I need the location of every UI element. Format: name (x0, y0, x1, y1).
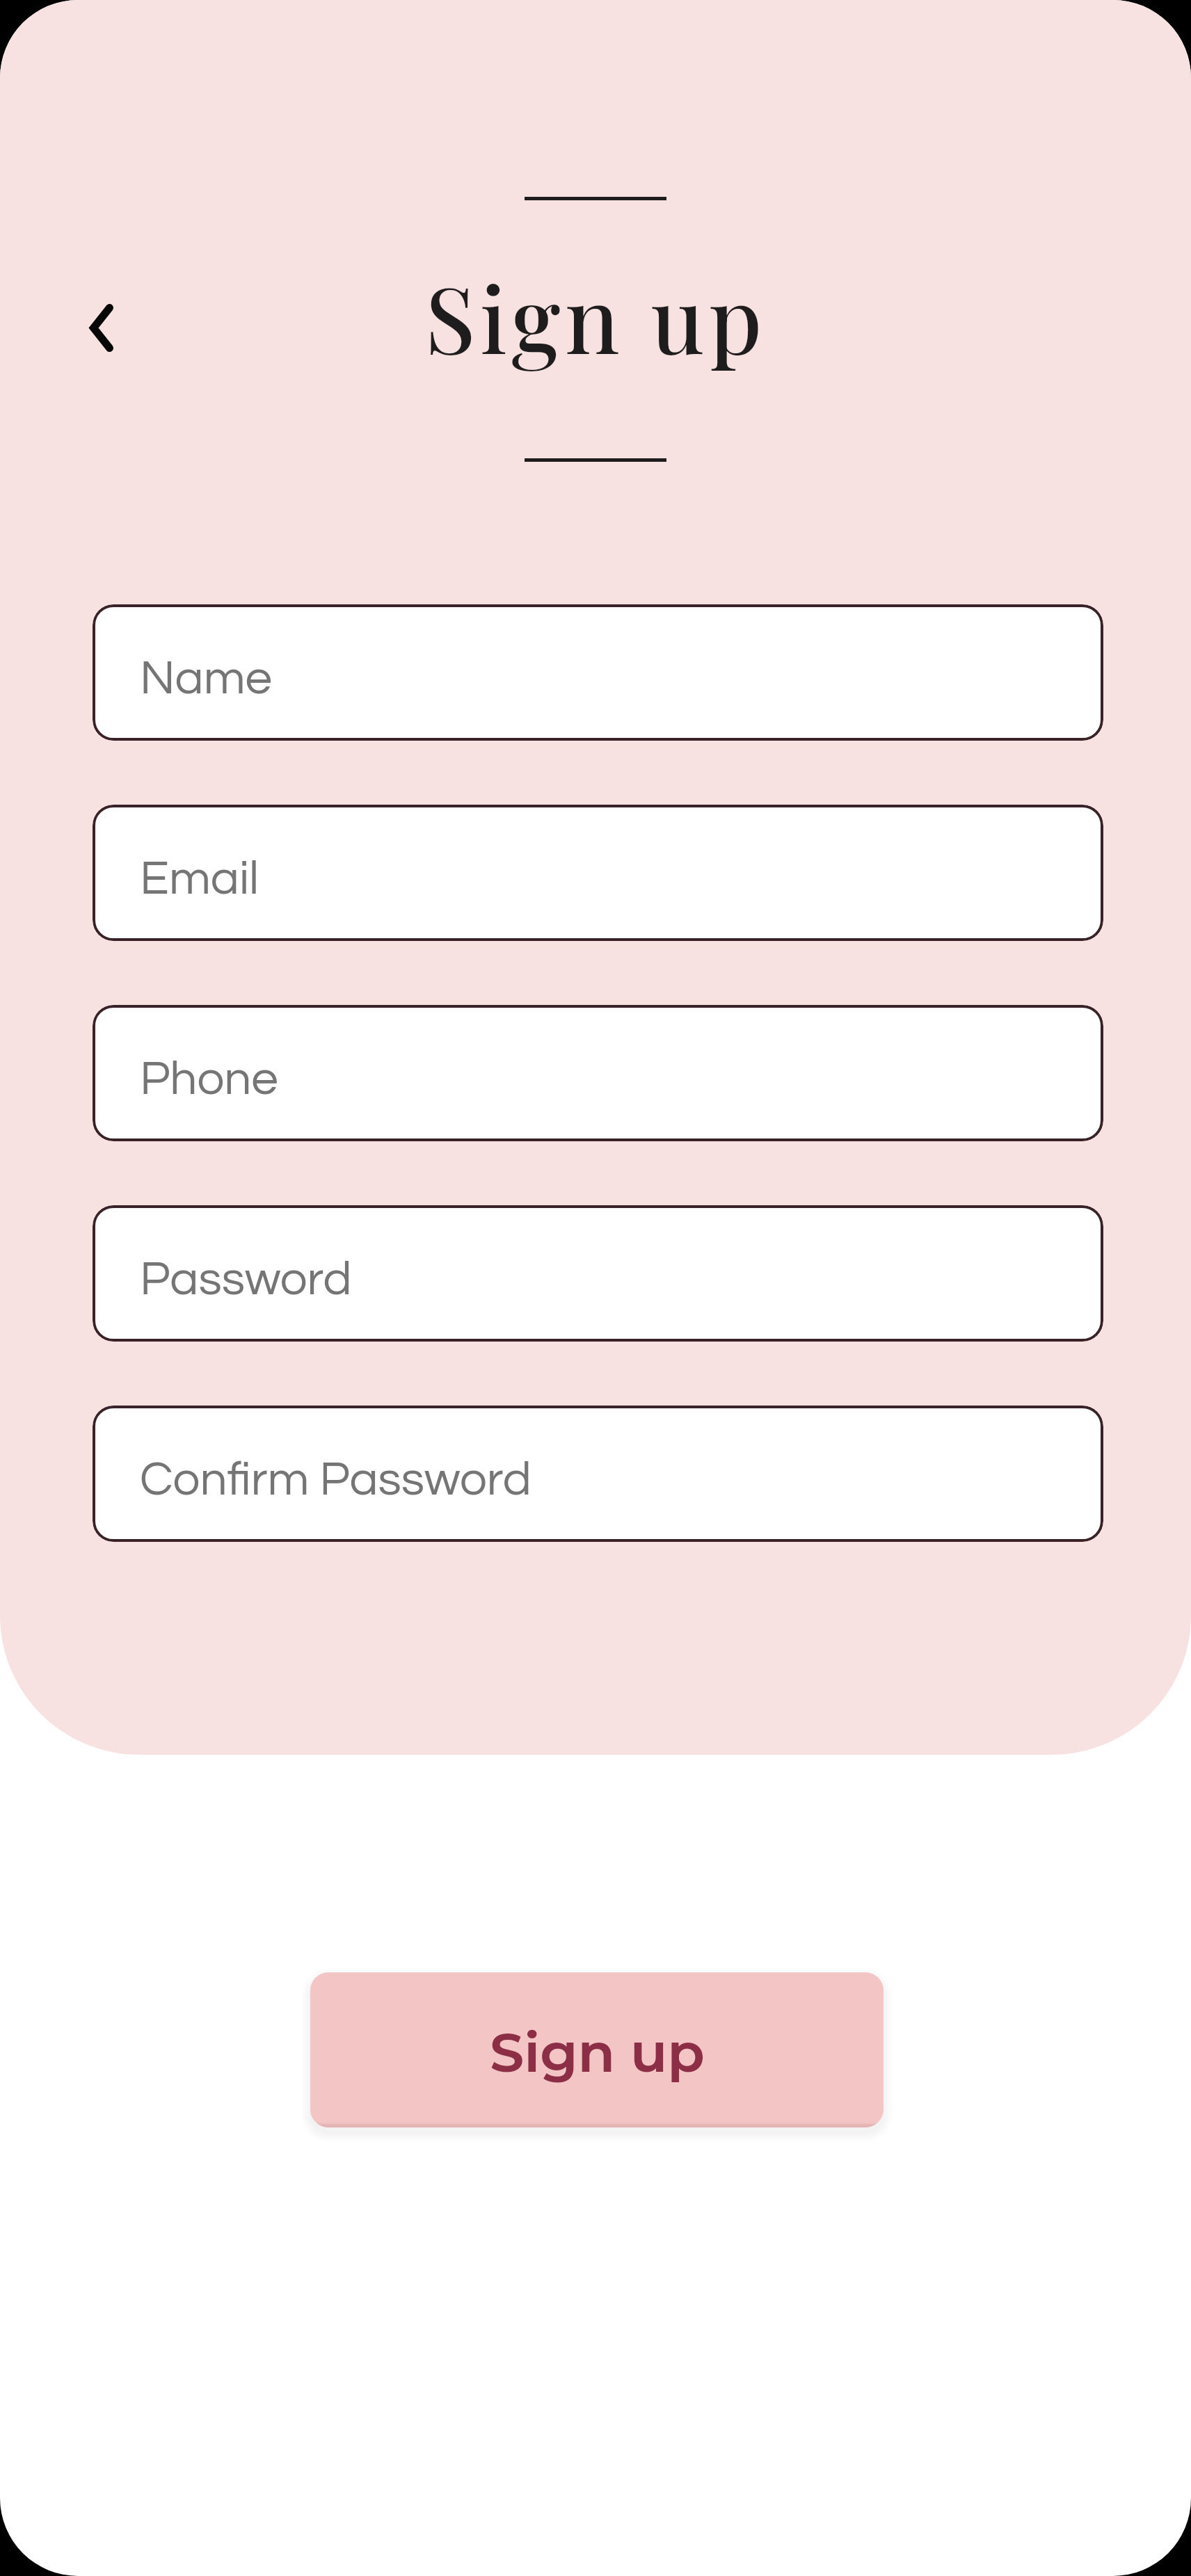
staticText: Sign up (425, 255, 767, 377)
button[interactable]: Phone (93, 1005, 1103, 1141)
button[interactable]: Password (93, 1205, 1103, 1342)
staticText: Sign up (490, 2019, 705, 2085)
button[interactable]: Sign up (310, 1972, 884, 2127)
button[interactable]: Back (49, 275, 154, 380)
button[interactable]: Name (93, 604, 1103, 741)
staticText: Email (140, 854, 259, 903)
staticText: Phone (140, 1054, 278, 1104)
button[interactable]: Confirm Password (93, 1406, 1103, 1542)
staticText: Confirm Password (140, 1455, 531, 1504)
button[interactable]: Email (93, 805, 1103, 941)
staticText: Name (140, 654, 272, 703)
staticText: Password (140, 1255, 352, 1304)
